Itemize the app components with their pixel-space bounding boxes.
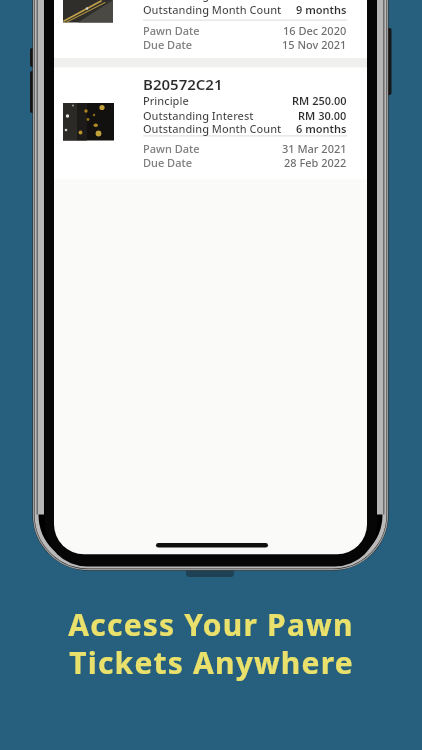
staticText: Outstanding Month Count — [143, 2, 282, 17]
staticText: Due Date — [143, 37, 192, 52]
staticText: Outstanding Interest — [143, 108, 254, 123]
staticText: Principle — [143, 93, 189, 108]
staticText: Tickets Anywhere — [69, 642, 354, 683]
staticText: Pawn Date — [143, 23, 200, 38]
button[interactable] — [54, 0, 367, 58]
staticText: 15 Nov 2021 — [282, 37, 347, 52]
staticText: 16 Dec 2020 — [283, 23, 347, 38]
staticText: RM 250.00 — [292, 93, 347, 108]
staticText: Outstanding Interest — [143, 0, 254, 2]
staticText: 6 months — [296, 121, 347, 136]
staticText: Due Date — [143, 155, 192, 170]
staticText: RM 30.00 — [298, 108, 347, 123]
staticText: 31 Mar 2021 — [282, 141, 347, 156]
staticText: Pawn Date — [143, 141, 200, 156]
staticText: Access Your Pawn — [68, 604, 354, 645]
staticText: Outstanding Month Count — [143, 121, 282, 136]
button[interactable] — [54, 68, 367, 180]
staticText: B20572C21 — [143, 74, 223, 94]
staticText: 9 months — [296, 2, 347, 17]
staticText: 28 Feb 2022 — [284, 155, 347, 170]
